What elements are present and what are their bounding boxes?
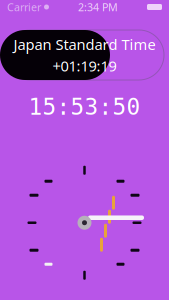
button[interactable]: Japan Standard Time: [0, 30, 169, 80]
staticText: +01:19:19: [52, 56, 116, 75]
staticText: Japan Standard Time: [13, 34, 155, 54]
staticText: 15:53:50: [28, 94, 140, 120]
staticText: 2:34 PM: [78, 0, 118, 14]
staticText: Carrier: [7, 0, 41, 14]
